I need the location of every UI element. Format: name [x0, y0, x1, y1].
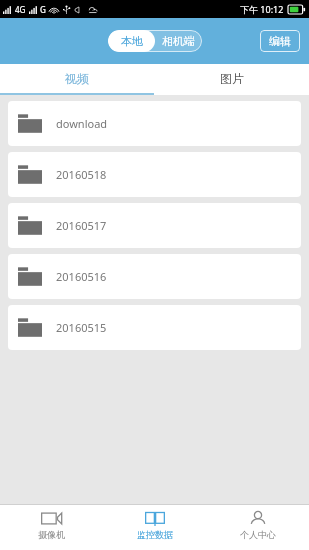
staticText: 监控数据: [137, 529, 173, 540]
staticText: 下午 10:12: [240, 3, 284, 15]
staticText: 20160518: [56, 167, 107, 182]
button[interactable]: 20160516: [8, 254, 301, 299]
staticText: 本地: [121, 34, 143, 48]
staticText: 编辑: [269, 34, 291, 48]
button[interactable]: 20160518: [8, 152, 301, 197]
staticText: 相机端: [162, 34, 195, 48]
button[interactable]: 摄像机: [0, 505, 103, 550]
button[interactable]: 编辑: [260, 30, 300, 52]
staticText: 20160515: [56, 320, 107, 335]
staticText: 20160516: [56, 269, 107, 284]
button[interactable]: 图片: [154, 64, 309, 93]
staticText: 视频: [65, 71, 89, 86]
staticText: 个人中心: [240, 529, 276, 540]
button[interactable]: 相机端: [155, 30, 202, 52]
staticText: 摄像机: [38, 529, 65, 540]
button[interactable]: 20160515: [8, 305, 301, 350]
staticText: G: [40, 4, 46, 15]
button[interactable]: 视频: [0, 64, 154, 93]
button[interactable]: download: [8, 101, 301, 146]
staticText: 图片: [220, 71, 244, 86]
staticText: 20160517: [56, 218, 107, 233]
staticText: download: [56, 116, 108, 131]
button[interactable]: 20160517: [8, 203, 301, 248]
button[interactable]: 监控数据: [103, 505, 206, 550]
button[interactable]: 个人中心: [206, 505, 309, 550]
button[interactable]: 本地: [108, 30, 155, 52]
staticText: 4G: [15, 4, 26, 15]
